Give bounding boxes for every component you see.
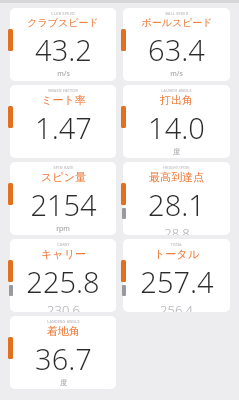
staticText: 257.4 <box>140 262 214 301</box>
staticText: TOTAL <box>170 242 183 247</box>
staticText: スピン量 <box>41 170 86 184</box>
staticText: LANDING ANGLE <box>47 319 80 324</box>
staticText: HEIGHT (YDS) <box>163 165 190 170</box>
button[interactable]: BALL SPEED <box>121 8 230 81</box>
staticText: 2154 <box>30 185 97 224</box>
staticText: rpm <box>56 224 70 234</box>
staticText: 1.47 <box>35 108 92 147</box>
staticText: CARRY <box>57 242 70 247</box>
staticText: 230.6 <box>47 301 80 312</box>
staticText: キャリー <box>41 247 86 261</box>
button[interactable]: CARRY <box>8 239 116 312</box>
staticText: 着地角 <box>47 324 80 338</box>
staticText: トータル <box>154 247 199 261</box>
staticText: CLUB SPEED <box>51 11 75 16</box>
staticText: 度 <box>173 147 180 156</box>
staticText: 28.1 <box>148 185 205 224</box>
button[interactable]: CLUB SPEED <box>8 8 116 81</box>
staticText: SMASH FACTOR <box>48 88 78 93</box>
staticText: 最高到達点 <box>149 170 204 184</box>
staticText: 43.2 <box>35 30 92 69</box>
staticText: 14.0 <box>148 108 205 147</box>
staticText: 度 <box>60 378 67 387</box>
button[interactable]: HEIGHT (YDS) <box>121 162 230 235</box>
staticText: 28.8 <box>164 224 190 235</box>
staticText: BALL SPEED <box>165 11 189 16</box>
staticText: 256.4 <box>160 301 193 312</box>
button[interactable]: LAUNCH ANGLE <box>121 85 230 158</box>
staticText: 打出角 <box>160 93 193 107</box>
button[interactable]: LANDING ANGLE <box>8 316 116 389</box>
staticText: LAUNCH ANGLE <box>161 88 192 93</box>
staticText: m/s <box>170 69 183 79</box>
staticText: 63.4 <box>148 30 205 69</box>
staticText: m/s <box>57 69 70 79</box>
button[interactable]: TOTAL <box>121 239 230 312</box>
button[interactable]: SMASH FACTOR <box>8 85 116 158</box>
staticText: SPIN RATE <box>53 165 74 170</box>
staticText: 36.7 <box>35 339 92 378</box>
staticText: ボールスピード <box>141 16 213 29</box>
button[interactable]: SPIN RATE <box>8 162 116 235</box>
staticText: ミート率 <box>41 93 86 107</box>
staticText: 225.8 <box>26 262 100 301</box>
staticText: クラブスピード <box>27 16 99 29</box>
